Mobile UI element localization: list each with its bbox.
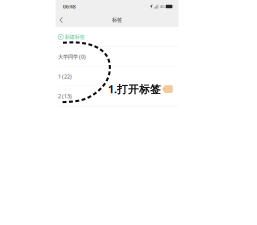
button[interactable]: 1 (22) (55, 67, 178, 86)
button[interactable]: 新建标签 (55, 27, 178, 47)
staticText: 新建标签 (65, 34, 85, 40)
button[interactable]: 2 (13) (55, 86, 178, 106)
staticText: 4G (160, 4, 165, 9)
staticText: 1.打开标签 (108, 82, 161, 96)
staticText: 1 (22) (58, 73, 72, 80)
button[interactable]: 大学同学 (0) (55, 47, 178, 67)
button[interactable]: Back (57, 15, 65, 25)
staticText: 06:48 (63, 3, 76, 10)
staticText: 2 (13) (58, 93, 72, 100)
staticText: 标签 (112, 17, 122, 23)
staticText: 大学同学 (0) (58, 53, 86, 60)
